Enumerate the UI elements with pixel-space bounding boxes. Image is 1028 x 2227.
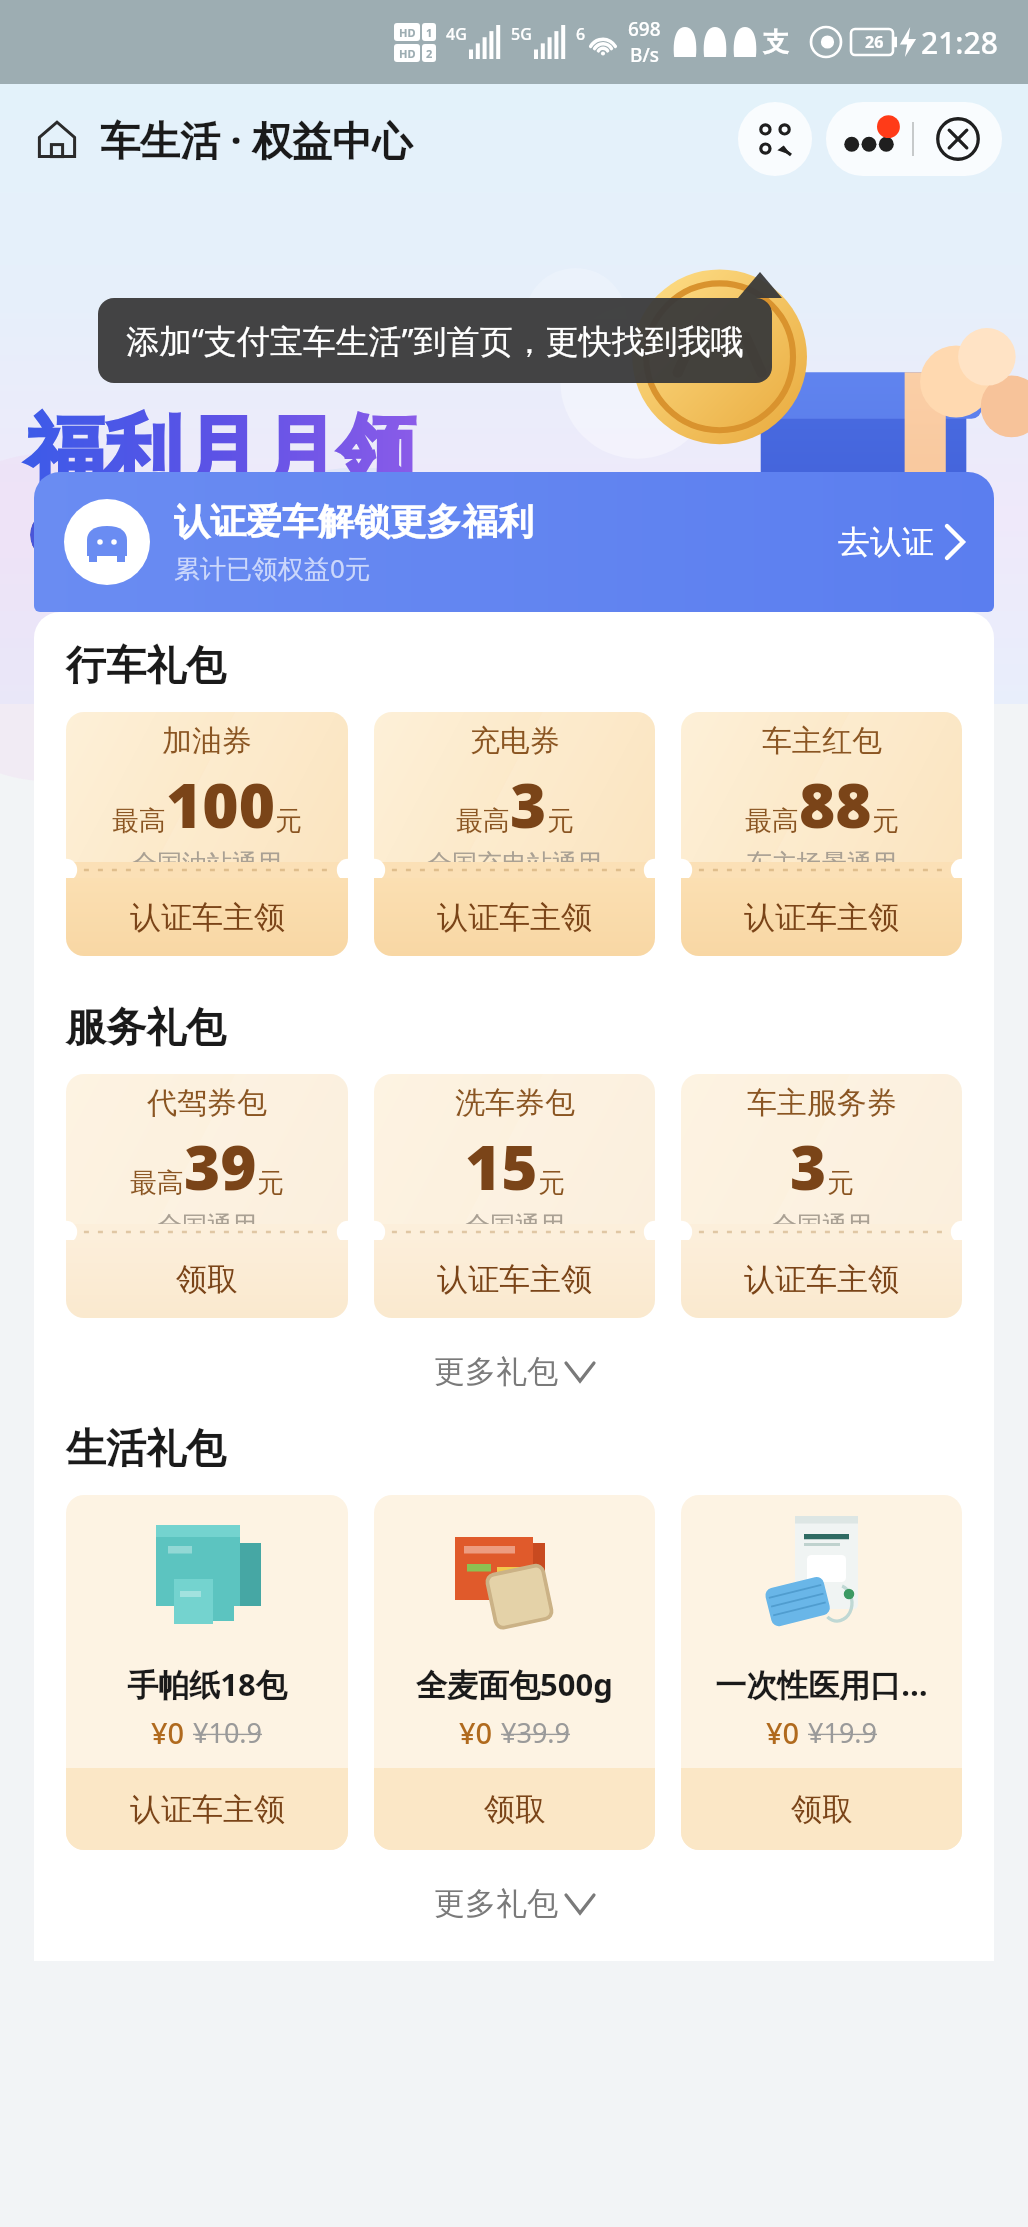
staticText: 全国通用 bbox=[157, 1210, 257, 1224]
staticText: 698 bbox=[628, 16, 661, 42]
staticText: 添加“支付宝车生活”到首页，更快找到我哦 bbox=[126, 318, 744, 363]
staticText: 认证车主领 bbox=[744, 898, 899, 937]
staticText: 元 bbox=[257, 1166, 284, 1200]
staticText: 行车礼包 bbox=[66, 640, 226, 690]
staticText: HD bbox=[399, 46, 416, 61]
staticText: 领取 bbox=[791, 1790, 853, 1829]
staticText: 3 bbox=[510, 762, 547, 846]
staticText: 服务礼包 bbox=[66, 1002, 226, 1052]
staticText: 最高 bbox=[456, 804, 510, 838]
button[interactable]: 洗车券包 bbox=[374, 1074, 655, 1318]
button[interactable]: 更多礼包 bbox=[66, 1876, 962, 1931]
staticText: 100 bbox=[166, 762, 275, 846]
staticText: 领取 bbox=[176, 1260, 238, 1299]
button[interactable]: Home bbox=[26, 108, 88, 170]
staticText: ¥19.9 bbox=[808, 1714, 878, 1751]
staticText: 车主红包 bbox=[762, 722, 882, 760]
staticText: 加油券 bbox=[162, 722, 252, 760]
staticText: 88 bbox=[799, 762, 872, 846]
button[interactable]: Mini program bbox=[738, 102, 812, 176]
staticText: 6 bbox=[576, 23, 586, 45]
staticText: 39 bbox=[184, 1124, 257, 1208]
staticText: 价值100元权益 bbox=[228, 516, 417, 554]
staticText: ¥10.9 bbox=[193, 1714, 263, 1751]
staticText: ¥0 bbox=[151, 1713, 185, 1752]
staticText: 累计已领权益0元 bbox=[174, 550, 371, 586]
staticText: 代驾券包 bbox=[147, 1084, 267, 1122]
staticText: 最高 bbox=[130, 1166, 184, 1200]
staticText: 3 bbox=[790, 1124, 827, 1208]
staticText: 5G bbox=[511, 23, 532, 45]
staticText: 最高 bbox=[112, 804, 166, 838]
staticText: 车主服务券 bbox=[747, 1084, 897, 1122]
staticText: 手帕纸18包 bbox=[66, 1663, 348, 1705]
button[interactable]: 认证爱车解锁更多福利 bbox=[34, 472, 994, 612]
staticText: 去认证 bbox=[838, 522, 934, 562]
staticText: 充电券 bbox=[470, 722, 560, 760]
staticText: 元 bbox=[538, 1166, 565, 1200]
staticText: 支 bbox=[763, 26, 789, 59]
staticText: 元 bbox=[872, 804, 899, 838]
button[interactable]: 更多礼包 bbox=[66, 1344, 962, 1399]
button[interactable]: 全麦面包500g bbox=[374, 1495, 655, 1850]
staticText: ¥0 bbox=[459, 1713, 493, 1752]
staticText: 福利月月领 bbox=[26, 404, 416, 502]
staticText: 更多礼包 bbox=[434, 1352, 558, 1391]
staticText: 26 bbox=[865, 31, 884, 53]
staticText: 元 bbox=[547, 804, 574, 838]
button[interactable]: 代驾券包 bbox=[66, 1074, 348, 1318]
staticText: 生活礼包 bbox=[66, 1423, 226, 1473]
button[interactable]: 添加“支付宝车生活”到首页，更快找到我哦 bbox=[98, 298, 772, 383]
staticText: HD bbox=[399, 25, 416, 40]
staticText: ¥39.9 bbox=[501, 1714, 571, 1751]
staticText: 1 bbox=[426, 25, 433, 40]
staticText: 更多礼包 bbox=[434, 1884, 558, 1923]
staticText: 认证车主领 bbox=[437, 1260, 592, 1299]
staticText: 认证车主领 bbox=[130, 1790, 285, 1829]
staticText: 认证车主领 bbox=[437, 898, 592, 937]
button[interactable]: More options bbox=[826, 102, 912, 176]
staticText: 每月最高领 bbox=[50, 518, 190, 553]
staticText: 21:28 bbox=[921, 22, 998, 63]
staticText: ¥0 bbox=[766, 1713, 800, 1752]
staticText: B/s bbox=[630, 42, 659, 68]
button[interactable]: 一次性医用口… bbox=[681, 1495, 962, 1850]
staticText: 车生活 · 权益中心 bbox=[100, 112, 413, 167]
staticText: 全国油站通用 bbox=[132, 848, 282, 862]
button[interactable]: 车主服务券 bbox=[681, 1074, 962, 1318]
staticText: 全麦面包500g bbox=[374, 1663, 655, 1705]
staticText: 认证爱车解锁更多福利 bbox=[174, 499, 534, 544]
staticText: 元 bbox=[827, 1166, 854, 1200]
staticText: 2 bbox=[426, 46, 433, 61]
button[interactable]: Close bbox=[914, 102, 1002, 176]
staticText: 4G bbox=[446, 23, 467, 45]
button[interactable]: 手帕纸18包 bbox=[66, 1495, 348, 1850]
staticText: 15 bbox=[465, 1124, 538, 1208]
staticText: 全国充电站通用 bbox=[427, 848, 602, 862]
staticText: 领取 bbox=[484, 1790, 546, 1829]
staticText: 车主场景通用 bbox=[747, 848, 897, 862]
staticText: 一次性医用口… bbox=[681, 1663, 962, 1705]
staticText: 认证车主领 bbox=[744, 1260, 899, 1299]
staticText: 全国通用 bbox=[772, 1210, 872, 1224]
staticText: 最高 bbox=[745, 804, 799, 838]
staticText: 元 bbox=[275, 804, 302, 838]
button[interactable]: 充电券 bbox=[374, 712, 655, 956]
staticText: 认证车主领 bbox=[130, 898, 285, 937]
button[interactable]: 加油券 bbox=[66, 712, 348, 956]
staticText: 洗车券包 bbox=[455, 1084, 575, 1122]
button[interactable]: 车主红包 bbox=[681, 712, 962, 956]
staticText: 全国通用 bbox=[465, 1210, 565, 1224]
